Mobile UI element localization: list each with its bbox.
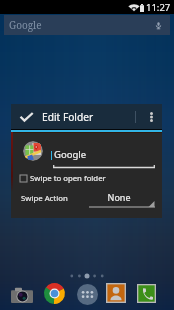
button[interactable]: Swipe to open folder [18,171,106,185]
staticText: Edit Folder [42,110,94,124]
button[interactable]: Apps [77,284,98,305]
button[interactable]: None [89,190,155,212]
other: Voice search [153,20,164,31]
button[interactable]: Google [4,15,170,35]
button[interactable]: Google [51,148,156,166]
staticText: Swipe to open folder [30,173,106,184]
button[interactable]: Phone [137,284,156,303]
staticText: None [86,191,152,203]
staticText: Swipe Action [21,193,68,204]
button[interactable]: Chrome [44,283,65,304]
button[interactable]: Camera [11,285,33,307]
button[interactable]: More options [140,104,162,129]
staticText: 11:27 [146,1,171,14]
other: Done [20,112,33,122]
staticText: Google [54,148,87,161]
button[interactable]: Contacts [106,283,126,303]
button[interactable]: Done [11,104,162,129]
staticText: Google [9,18,42,32]
